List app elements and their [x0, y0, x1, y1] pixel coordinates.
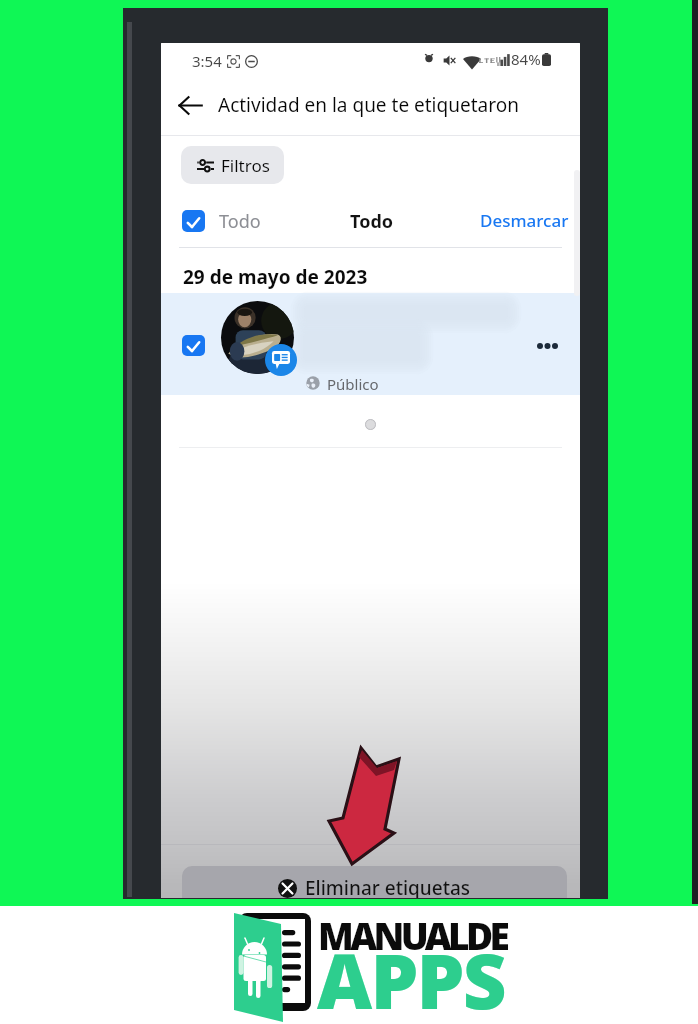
staticText: Público [327, 374, 379, 394]
staticText: APPS [317, 928, 505, 1024]
staticText: 84% [511, 49, 541, 69]
button[interactable]: Todo [350, 209, 394, 234]
staticText: Actividad en la que te etiquetaron [218, 92, 519, 118]
staticText: Desmarcar [480, 209, 569, 232]
staticText: Filtros [221, 154, 270, 177]
button[interactable]: Desmarcar [480, 209, 569, 232]
staticText: 29 de mayo de 2023 [183, 264, 368, 290]
staticText: Todo [350, 209, 394, 234]
button[interactable]: Back [171, 86, 209, 124]
button[interactable]: Todo [219, 209, 261, 234]
staticText: MANUALDE [318, 910, 507, 960]
button[interactable]: Eliminar etiquetas [182, 866, 567, 898]
staticText: Eliminar etiquetas [305, 875, 471, 898]
staticText: 3:54 [192, 51, 222, 71]
button[interactable]: Select all [182, 210, 205, 232]
button[interactable]: Filtros [181, 146, 284, 184]
staticText: Todo [219, 209, 261, 234]
button[interactable]: More options [531, 330, 563, 362]
button[interactable]: Select post [182, 335, 205, 356]
button[interactable]: Select post [161, 293, 580, 395]
